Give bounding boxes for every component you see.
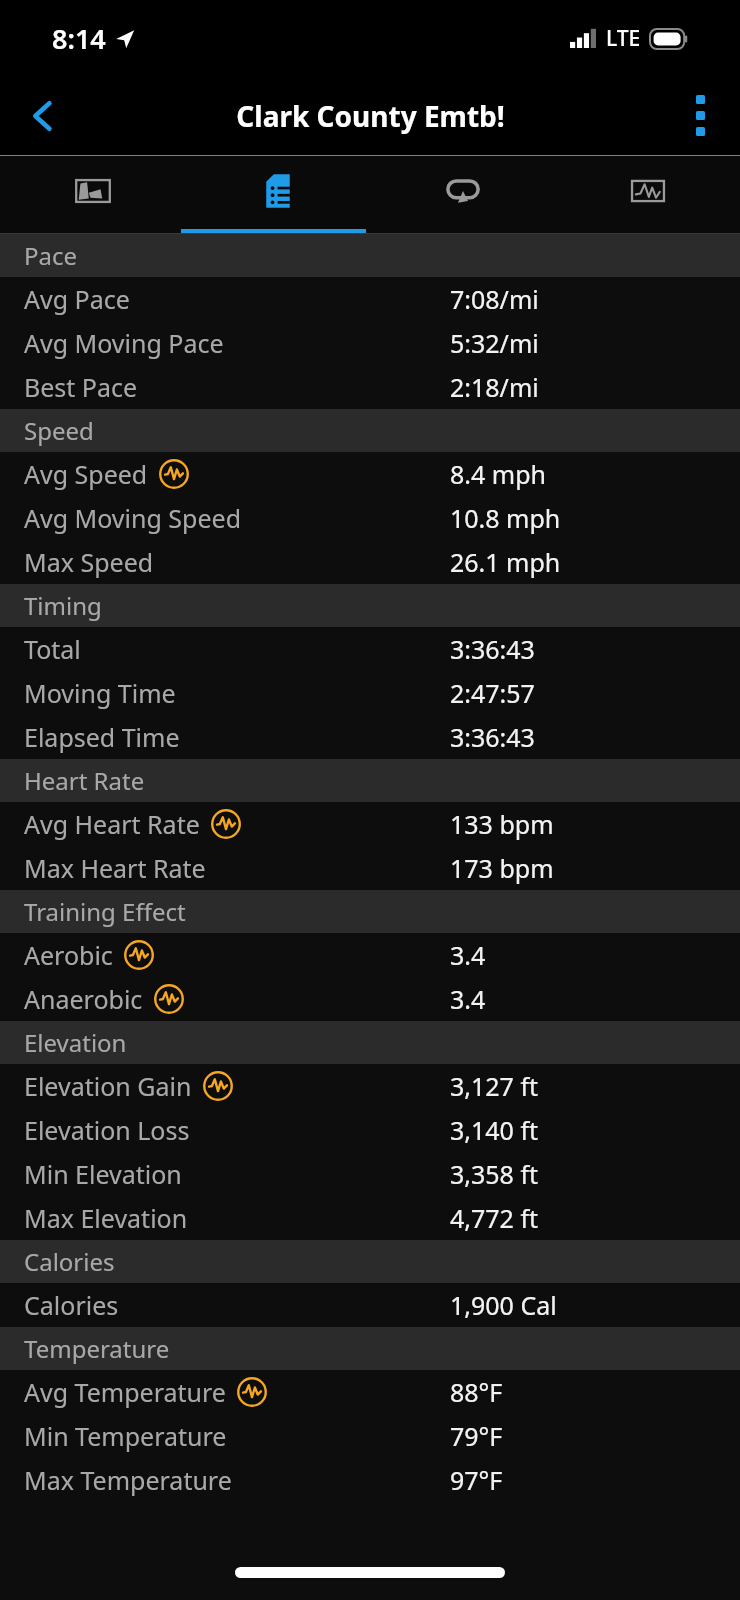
staticText: Avg Pace bbox=[24, 282, 130, 316]
staticText: Best Pace bbox=[24, 370, 138, 404]
staticText: Max Temperature bbox=[24, 1463, 232, 1497]
staticText: Training Effect bbox=[24, 895, 186, 928]
staticText: Moving Time bbox=[24, 676, 176, 710]
staticText: 3,140 ft bbox=[450, 1113, 539, 1147]
staticText: Timing bbox=[24, 589, 102, 622]
staticText: Avg Speed bbox=[24, 457, 148, 491]
staticText: 10.8 mph bbox=[450, 501, 561, 535]
staticText: 1,900 Cal bbox=[450, 1288, 557, 1322]
staticText: Calories bbox=[24, 1288, 119, 1322]
staticText: Max Heart Rate bbox=[24, 851, 206, 885]
staticText: Elevation Loss bbox=[24, 1113, 190, 1147]
staticText: 8.4 mph bbox=[450, 457, 547, 491]
staticText: 2:47:57 bbox=[450, 676, 535, 710]
button[interactable]: Total bbox=[0, 627, 740, 671]
staticText: Elevation Gain bbox=[24, 1069, 192, 1103]
staticText: Anaerobic bbox=[24, 982, 143, 1016]
button[interactable]: Avg Moving Pace bbox=[0, 321, 740, 365]
staticText: Heart Rate bbox=[24, 764, 145, 797]
button[interactable]: Details bbox=[185, 156, 370, 234]
button[interactable]: Back bbox=[0, 76, 86, 155]
button[interactable]: Avg Heart Rate bbox=[0, 802, 740, 846]
staticText: 3.4 bbox=[450, 938, 486, 972]
button[interactable]: Avg Pace bbox=[0, 277, 740, 321]
staticText: Avg Heart Rate bbox=[24, 807, 200, 841]
staticText: Aerobic bbox=[24, 938, 113, 972]
staticText: Avg Moving Speed bbox=[24, 501, 242, 535]
button[interactable]: Laps bbox=[370, 156, 555, 234]
staticText: 173 bpm bbox=[450, 851, 554, 885]
staticText: 3.4 bbox=[450, 982, 486, 1016]
button[interactable]: Max Heart Rate bbox=[0, 846, 740, 890]
button[interactable]: Elevation Gain bbox=[0, 1064, 740, 1108]
button[interactable]: Max Speed bbox=[0, 540, 740, 584]
button[interactable]: Anaerobic bbox=[0, 977, 740, 1021]
staticText: 5:32/mi bbox=[450, 326, 539, 360]
staticText: Speed bbox=[24, 414, 94, 447]
staticText: 8:14 bbox=[52, 20, 106, 57]
button[interactable]: More options bbox=[660, 76, 740, 155]
staticText: Avg Moving Pace bbox=[24, 326, 224, 360]
button[interactable]: Calories bbox=[0, 1283, 740, 1327]
staticText: Pace bbox=[24, 239, 78, 272]
button[interactable]: Charts bbox=[555, 156, 740, 234]
button[interactable]: Best Pace bbox=[0, 365, 740, 409]
button[interactable]: Elevation Loss bbox=[0, 1108, 740, 1152]
staticText: 3,358 ft bbox=[450, 1157, 539, 1191]
staticText: Elapsed Time bbox=[24, 720, 180, 754]
staticText: Min Elevation bbox=[24, 1157, 182, 1191]
staticText: 2:18/mi bbox=[450, 370, 539, 404]
staticText: Calories bbox=[24, 1245, 115, 1278]
button[interactable]: Min Temperature bbox=[0, 1414, 740, 1458]
staticText: Temperature bbox=[24, 1332, 170, 1365]
button[interactable]: Max Temperature bbox=[0, 1458, 740, 1502]
staticText: 97°F bbox=[450, 1463, 503, 1497]
staticText: Elevation bbox=[24, 1026, 127, 1059]
button[interactable]: Elapsed Time bbox=[0, 715, 740, 759]
button[interactable]: Avg Moving Speed bbox=[0, 496, 740, 540]
staticText: Max Elevation bbox=[24, 1201, 188, 1235]
button[interactable]: Avg Speed bbox=[0, 452, 740, 496]
button[interactable]: Avg Temperature bbox=[0, 1370, 740, 1414]
staticText: 3:36:43 bbox=[450, 632, 535, 666]
staticText: 3,127 ft bbox=[450, 1069, 539, 1103]
staticText: 7:08/mi bbox=[450, 282, 539, 316]
staticText: 88°F bbox=[450, 1375, 503, 1409]
staticText: Max Speed bbox=[24, 545, 154, 579]
staticText: 26.1 mph bbox=[450, 545, 561, 579]
button[interactable]: Min Elevation bbox=[0, 1152, 740, 1196]
staticText: Min Temperature bbox=[24, 1419, 227, 1453]
staticText: Total bbox=[24, 632, 81, 666]
staticText: Clark County Emtb! bbox=[236, 97, 505, 135]
button[interactable]: Moving Time bbox=[0, 671, 740, 715]
staticText: 3:36:43 bbox=[450, 720, 535, 754]
staticText: Avg Temperature bbox=[24, 1375, 226, 1409]
button[interactable]: Max Elevation bbox=[0, 1196, 740, 1240]
button[interactable]: Aerobic bbox=[0, 933, 740, 977]
staticText: 4,772 ft bbox=[450, 1201, 539, 1235]
button[interactable]: Map bbox=[0, 156, 185, 234]
staticText: 133 bpm bbox=[450, 807, 554, 841]
staticText: LTE bbox=[606, 24, 641, 53]
staticText: 79°F bbox=[450, 1419, 503, 1453]
